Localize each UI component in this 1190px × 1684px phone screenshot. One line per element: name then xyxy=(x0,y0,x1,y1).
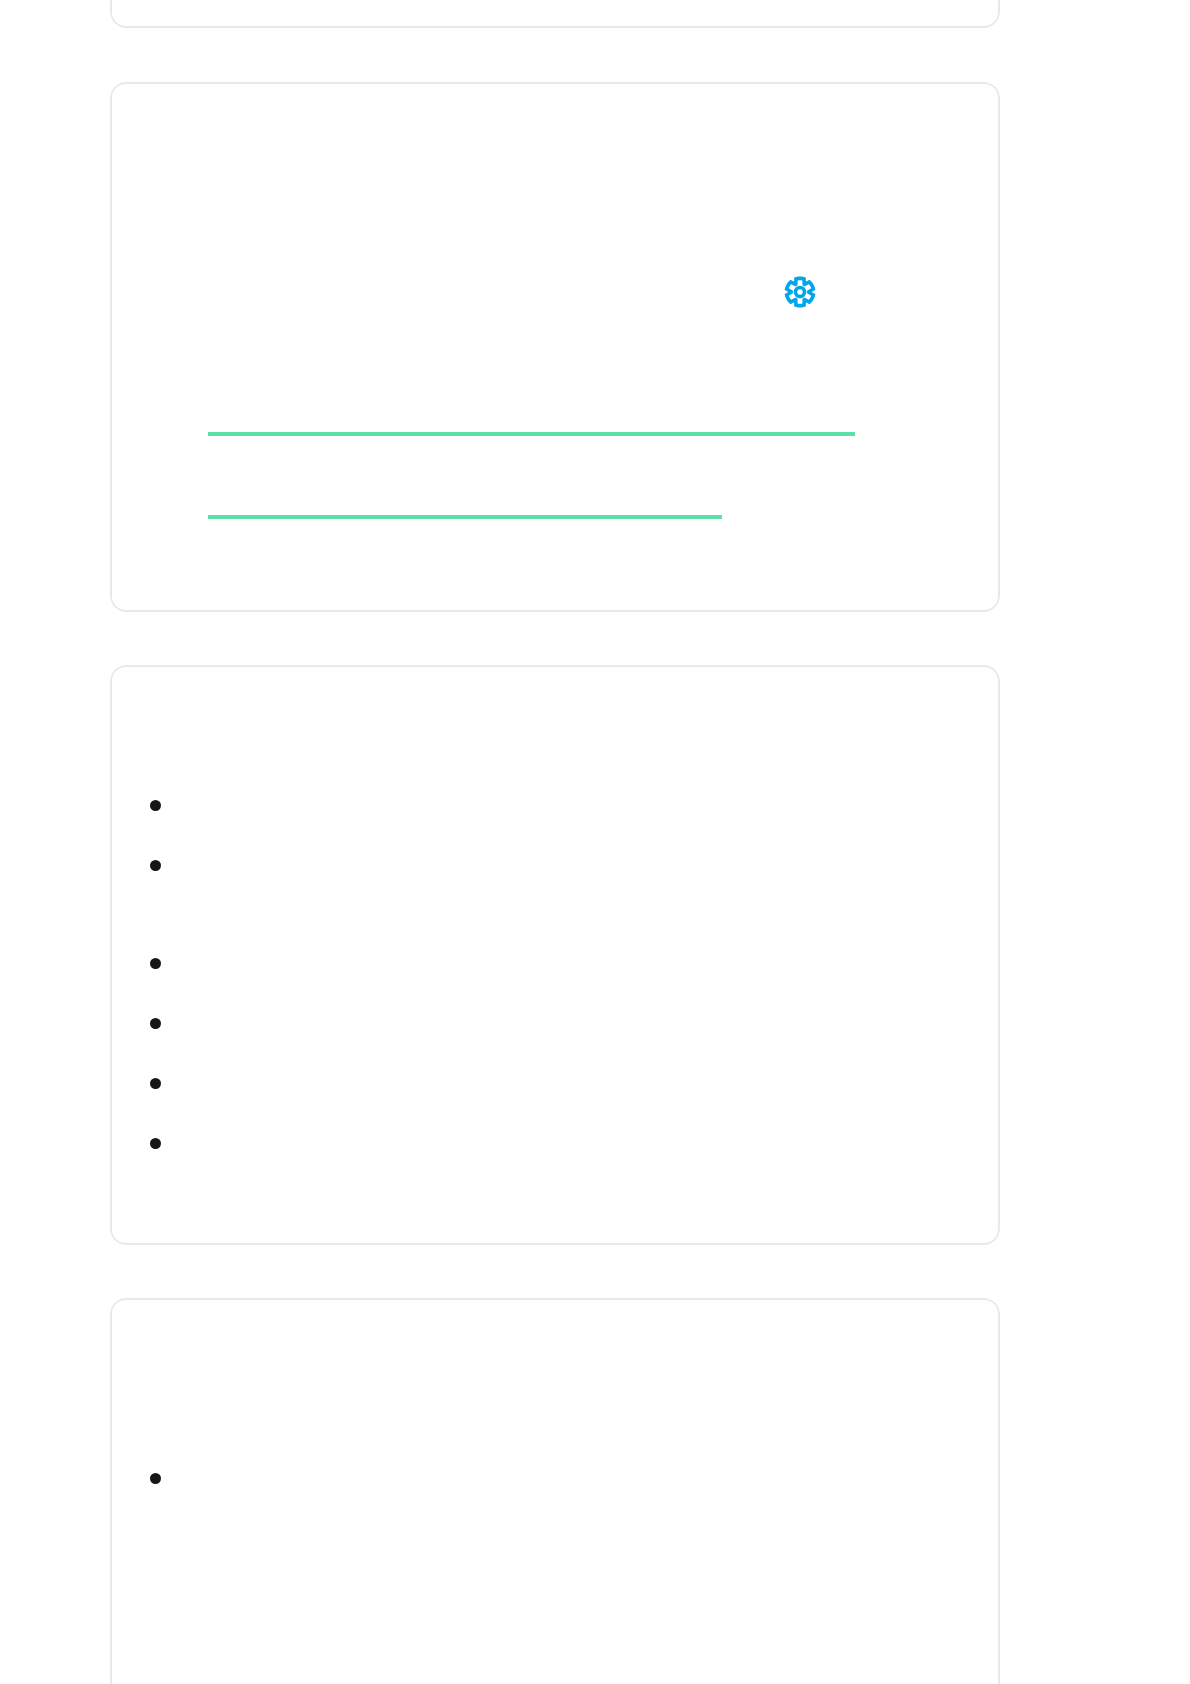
button[interactable]: Settings xyxy=(778,270,822,314)
button[interactable] xyxy=(110,665,1000,1245)
button[interactable] xyxy=(150,1063,960,1103)
button[interactable] xyxy=(110,1298,1000,1684)
button[interactable] xyxy=(150,785,960,825)
button[interactable] xyxy=(150,943,960,983)
button[interactable] xyxy=(150,845,960,885)
button[interactable] xyxy=(110,0,1000,28)
button[interactable] xyxy=(150,1123,960,1163)
button[interactable]: Settings xyxy=(110,82,1000,612)
button[interactable] xyxy=(150,1458,960,1498)
button[interactable] xyxy=(150,1003,960,1043)
